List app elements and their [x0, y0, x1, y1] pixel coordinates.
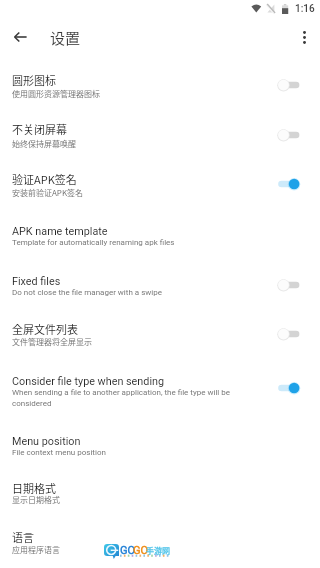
staticText: GO [133, 544, 149, 557]
button[interactable] [0, 160, 320, 208]
button[interactable]: More options [293, 26, 316, 49]
staticText: 验证APK签名 [12, 171, 77, 187]
button[interactable] [0, 364, 320, 419]
button[interactable] [0, 310, 320, 357]
staticText: 1:16 [295, 3, 315, 15]
button[interactable]: Toggle off [275, 274, 303, 296]
button[interactable] [0, 111, 320, 159]
staticText: 语言 [12, 529, 34, 545]
staticText: 安装前验证APK签名 [12, 187, 312, 199]
button[interactable] [0, 424, 320, 469]
button[interactable] [0, 214, 320, 259]
staticText: Consider file type when sending [12, 375, 165, 388]
button[interactable] [0, 61, 320, 109]
staticText: 手游网 [146, 545, 170, 557]
staticText: 日期格式 [12, 480, 56, 496]
button[interactable]: Toggle off [275, 323, 303, 345]
button[interactable]: Toggle on [275, 173, 303, 195]
staticText: 全屏文件列表 [12, 321, 78, 337]
button[interactable]: Toggle on [275, 377, 303, 399]
staticText: 不关闭屏幕 [12, 121, 67, 137]
button[interactable] [0, 264, 320, 309]
button[interactable] [0, 519, 320, 566]
staticText: File context menu position [12, 448, 312, 457]
button[interactable] [0, 469, 320, 516]
staticText: 文件管理器将全屏显示 [12, 336, 312, 348]
button[interactable]: Toggle off [275, 124, 303, 146]
staticText: 显示日期格式 [12, 494, 312, 506]
staticText: APK name template [12, 225, 108, 238]
staticText: Do not close the file manager with a swi… [12, 288, 312, 297]
button[interactable]: Toggle off [275, 74, 303, 96]
button[interactable]: Back [8, 24, 33, 49]
staticText: When sending a file to another applicati… [12, 388, 242, 408]
staticText: Menu position [12, 435, 81, 448]
staticText: 使用圆形资源管理器图标 [12, 88, 312, 100]
staticText: 设置 [50, 27, 81, 49]
staticText: GO [120, 544, 136, 557]
staticText: 圆形图标 [12, 72, 56, 88]
staticText: Fixed files [12, 275, 61, 288]
staticText: Template for automatically renaming apk … [12, 238, 312, 247]
staticText: 应用程序语言 [12, 544, 312, 556]
staticText: 始终保持屏幕唤醒 [12, 138, 312, 150]
